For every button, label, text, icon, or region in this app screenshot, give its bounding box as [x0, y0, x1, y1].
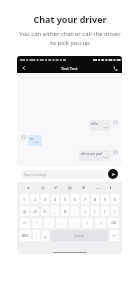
staticText: ◎ — [41, 185, 45, 190]
button[interactable]: Key 8 — [91, 194, 99, 204]
button[interactable]: Key ! — [82, 218, 93, 228]
button[interactable]: Key 2 — [31, 194, 39, 204]
staticText: 12:00 — [103, 126, 109, 129]
staticText: hi — [30, 137, 33, 141]
staticText: _ — [54, 209, 56, 214]
button[interactable]: Key $ — [41, 206, 49, 216]
staticText: 1 — [23, 197, 26, 202]
button[interactable]: Key / — [111, 206, 119, 216]
button[interactable]: Key 5 — [61, 194, 69, 204]
staticText: 12:00 — [103, 156, 109, 159]
button[interactable]: Key ; — [69, 218, 80, 228]
staticText: ▤ — [68, 185, 72, 190]
staticText: $ — [44, 209, 47, 214]
button[interactable]: Key + — [81, 206, 89, 216]
staticText: 7 — [84, 197, 87, 202]
button[interactable]: Key ( — [91, 206, 99, 216]
staticText: 2 — [34, 197, 37, 202]
staticText: 6 — [74, 197, 77, 202]
staticText: ABC — [22, 233, 29, 238]
staticText: Type a message — [24, 173, 47, 177]
staticText: — — [96, 185, 100, 190]
button[interactable]: Space — [51, 230, 108, 241]
button[interactable]: Key ' — [44, 218, 54, 228]
staticText: + — [84, 209, 87, 214]
staticText: ! — [87, 221, 88, 226]
button[interactable]: hello — [89, 120, 111, 131]
staticText: ' — [49, 221, 50, 226]
staticText: 9 — [104, 197, 107, 202]
button[interactable]: Key & — [61, 206, 69, 216]
button[interactable]: Key 9 — [101, 194, 109, 204]
staticText: ⚙ — [82, 185, 86, 190]
staticText: Test Test — [61, 66, 78, 71]
button[interactable]: Call — [111, 64, 119, 72]
staticText: hello — [91, 122, 98, 126]
staticText: 5 — [64, 197, 67, 202]
staticText: English — [74, 234, 85, 238]
staticText: " — [36, 221, 38, 226]
staticText: : — [61, 221, 62, 226]
staticText: 3 — [44, 197, 47, 202]
button[interactable]: Key ◂ — [24, 183, 33, 192]
button[interactable]: Key ? — [95, 218, 106, 228]
staticText: ⬇ — [109, 185, 113, 190]
button[interactable]: Back — [20, 64, 28, 72]
button[interactable]: Key - — [71, 206, 79, 216]
button[interactable]: Key ⌫ — [108, 218, 119, 228]
staticText: where are you? — [81, 152, 103, 156]
staticText: & — [64, 209, 67, 214]
button[interactable]: Key ▤ — [65, 183, 74, 192]
button[interactable]: Key ) — [101, 206, 109, 216]
button[interactable]: Key ⬇ — [106, 183, 115, 192]
button[interactable]: Key ✐ — [51, 183, 60, 192]
staticText: # — [34, 209, 37, 214]
button[interactable]: Key _ — [51, 206, 59, 216]
staticText: ? — [100, 221, 102, 226]
staticText: 4 — [54, 197, 57, 202]
staticText: - — [74, 209, 76, 214]
button[interactable]: Key 7 — [81, 194, 89, 204]
button[interactable]: Key 4 — [51, 194, 59, 204]
staticText: 12:01 — [34, 141, 40, 144]
button[interactable]: Key 3 — [41, 194, 49, 204]
button[interactable]: Key ◎ — [38, 183, 47, 192]
staticText: ( — [94, 209, 96, 214]
staticText: , — [36, 233, 37, 238]
button[interactable]: Type a message — [21, 170, 105, 179]
button[interactable]: Key , — [33, 230, 40, 241]
button[interactable]: Key 1 — [20, 194, 29, 204]
button[interactable]: Key # — [31, 206, 39, 216]
staticText: ↵ — [113, 234, 116, 238]
staticText: ) — [104, 209, 106, 214]
staticText: ␣ — [44, 234, 47, 238]
button[interactable]: Send — [108, 169, 118, 179]
button[interactable]: Key *" — [20, 218, 30, 228]
button[interactable]: Key ␣ — [42, 230, 49, 241]
button[interactable]: Key ↵ — [110, 230, 119, 241]
staticText: ◂ — [27, 185, 30, 190]
staticText: ✐ — [54, 185, 58, 190]
button[interactable]: Key : — [56, 218, 67, 228]
staticText: Chat your driver — [33, 13, 107, 25]
button[interactable]: Key 0 — [111, 194, 119, 204]
button[interactable]: Key ABC — [20, 230, 31, 241]
staticText: 0 — [114, 197, 117, 202]
button[interactable]: Key @ — [20, 206, 29, 216]
button[interactable]: Key — — [93, 183, 102, 192]
staticText: *" — [23, 221, 27, 226]
button[interactable]: Key 6 — [71, 194, 79, 204]
staticText: ⌫ — [111, 221, 116, 225]
staticText: / — [114, 209, 116, 214]
staticText: ; — [74, 221, 75, 226]
button[interactable]: where are you? — [79, 150, 111, 161]
button[interactable]: Key ⚙ — [79, 183, 88, 192]
staticText: @ — [23, 209, 27, 214]
button[interactable]: Key " — [32, 218, 42, 228]
button[interactable]: hi — [28, 135, 42, 146]
staticText: 8 — [94, 197, 97, 202]
staticText: You can either chat or call the driver t… — [14, 30, 126, 47]
